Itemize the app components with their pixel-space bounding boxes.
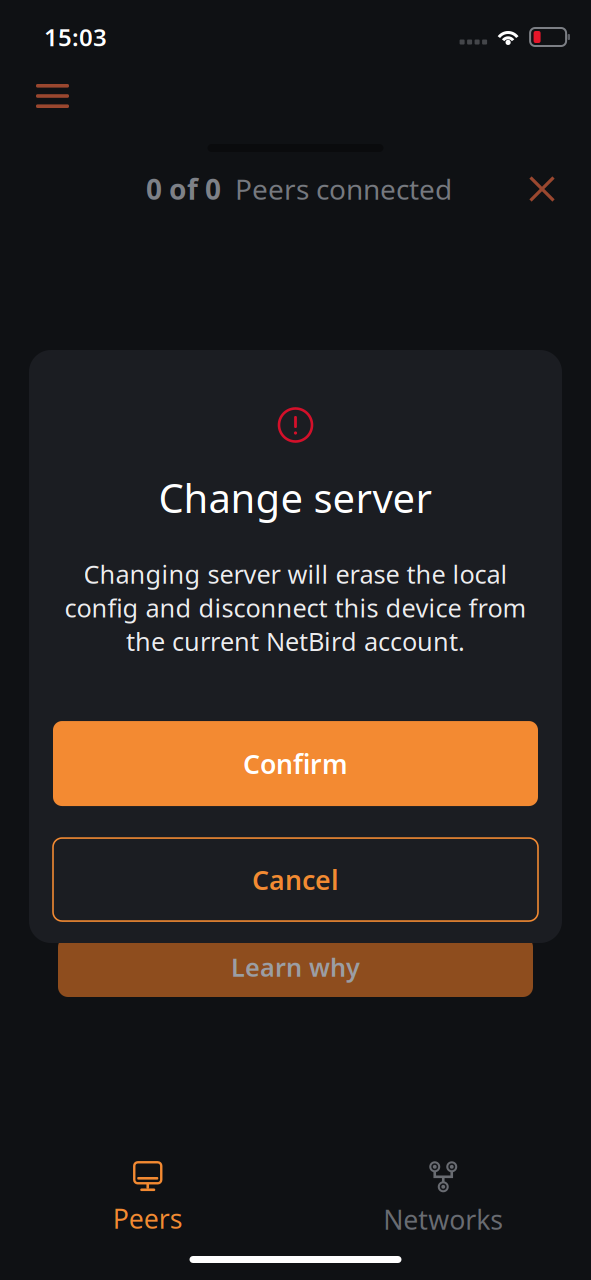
staticText: Cancel bbox=[252, 862, 339, 897]
button[interactable]: Learn why bbox=[58, 937, 533, 997]
button[interactable]: Close bbox=[520, 167, 564, 211]
staticText: config and disconnect this device from bbox=[64, 591, 526, 624]
staticText: Learn why bbox=[231, 950, 360, 984]
staticText: Change server bbox=[158, 471, 432, 524]
staticText: Peers bbox=[113, 1201, 183, 1236]
staticText: Networks bbox=[383, 1202, 503, 1237]
button[interactable]: Menu bbox=[22, 74, 83, 118]
staticText: Confirm bbox=[243, 746, 348, 781]
button[interactable]: Confirm bbox=[53, 721, 538, 806]
staticText: 0 of 0 bbox=[146, 170, 221, 208]
staticText: the current NetBird account. bbox=[126, 624, 465, 658]
staticText: 15:03 bbox=[44, 21, 107, 53]
staticText: Peers connected bbox=[235, 170, 452, 208]
staticText: Changing server will erase the local bbox=[83, 557, 507, 591]
button[interactable]: Cancel bbox=[53, 838, 538, 921]
button[interactable]: Networks bbox=[295, 1162, 591, 1236]
button[interactable]: Peers bbox=[0, 1162, 295, 1236]
